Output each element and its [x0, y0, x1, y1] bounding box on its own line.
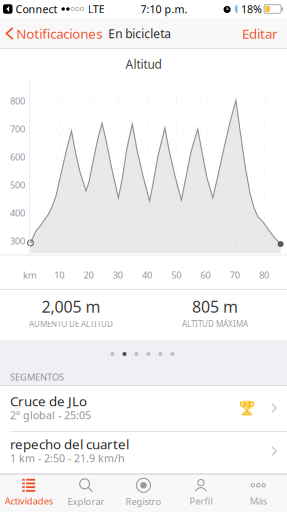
staticText: 7:10 p.m.	[140, 2, 187, 16]
staticText: Perfil	[189, 495, 212, 507]
staticText: 60	[200, 269, 210, 281]
staticText: LTE	[88, 2, 105, 16]
staticText: Notificaciones	[16, 25, 102, 42]
button[interactable]: repecho del cuartel	[0, 432, 287, 474]
staticText: 20	[83, 269, 93, 281]
button[interactable]: Más	[230, 474, 287, 512]
staticText: SEGMENTOS	[10, 371, 64, 383]
staticText: 805 m	[192, 296, 238, 317]
button[interactable]: Explorar	[57, 474, 115, 512]
staticText: Actividades	[5, 495, 53, 507]
button[interactable]: Notificaciones	[0, 18, 102, 49]
staticText: ALTITUD MÁXIMA	[182, 319, 248, 329]
staticText: 80	[259, 269, 269, 281]
staticText: 18%	[241, 2, 262, 16]
staticText: 500	[10, 179, 25, 191]
staticText: 30	[113, 269, 123, 281]
staticText: Altitud	[125, 56, 161, 72]
staticText: 2,005 m	[41, 296, 100, 317]
staticText: 10	[54, 269, 64, 281]
button[interactable]: Editar	[242, 18, 287, 49]
staticText: 400	[10, 207, 25, 219]
staticText: 300	[10, 235, 25, 247]
staticText: 800	[10, 95, 25, 107]
staticText: Registro	[125, 495, 161, 508]
staticText: Explorar	[68, 495, 105, 508]
button[interactable]: Cruce de JLo	[0, 386, 287, 432]
staticText: repecho del cuartel	[10, 435, 129, 453]
staticText: Connect	[15, 2, 57, 16]
staticText: 700	[10, 123, 25, 135]
staticText: km	[23, 269, 37, 281]
staticText: 2	[244, 400, 249, 411]
staticText: 40	[142, 269, 152, 281]
staticText: 70	[230, 269, 240, 281]
staticText: 1 km - 2:50 - 21.9 km/h	[10, 451, 125, 465]
staticText: 600	[10, 151, 25, 163]
button[interactable]: Perfil	[172, 474, 230, 512]
staticText: 2º global - 25:05	[10, 408, 91, 422]
staticText: Más	[250, 495, 267, 507]
staticText: Cruce de JLo	[10, 392, 87, 410]
staticText: AUMENTO DE ALTITUD	[29, 319, 113, 329]
staticText: Editar	[242, 25, 278, 42]
button[interactable]: Registro	[115, 474, 172, 512]
staticText: 50	[171, 269, 181, 281]
button[interactable]: Actividades	[0, 474, 57, 512]
staticText: En bicicleta	[108, 25, 171, 41]
